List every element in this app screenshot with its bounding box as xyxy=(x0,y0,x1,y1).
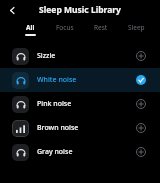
button[interactable]: Add Sizzle xyxy=(134,49,148,63)
staticText: Sleep xyxy=(128,23,145,32)
staticText: Sleep Music Library xyxy=(0,4,160,16)
button[interactable]: Add Brown noise xyxy=(134,121,148,135)
staticText: All xyxy=(26,23,35,32)
button[interactable]: Back xyxy=(4,2,20,18)
staticText: Gray noise xyxy=(37,147,73,157)
staticText: Sizzle xyxy=(37,51,56,61)
button[interactable]: Rest xyxy=(93,22,109,37)
button[interactable]: All xyxy=(24,22,37,37)
button[interactable]: Add Pink noise xyxy=(134,97,148,111)
staticText: Rest xyxy=(94,23,108,32)
button[interactable]: Selected xyxy=(134,73,148,87)
staticText: Pink noise xyxy=(37,99,72,109)
button[interactable]: Pink noise xyxy=(0,92,160,116)
button[interactable]: Sleep xyxy=(127,22,146,37)
staticText: Brown noise xyxy=(37,123,79,133)
button[interactable]: Add Gray noise xyxy=(134,145,148,159)
button[interactable]: White noise xyxy=(0,68,160,92)
staticText: Focus xyxy=(56,23,74,32)
button[interactable]: Brown noise xyxy=(0,116,160,140)
button[interactable]: Focus xyxy=(55,22,75,37)
button[interactable]: Sizzle xyxy=(0,44,160,68)
button[interactable]: Gray noise xyxy=(0,140,160,164)
staticText: White noise xyxy=(37,75,77,85)
